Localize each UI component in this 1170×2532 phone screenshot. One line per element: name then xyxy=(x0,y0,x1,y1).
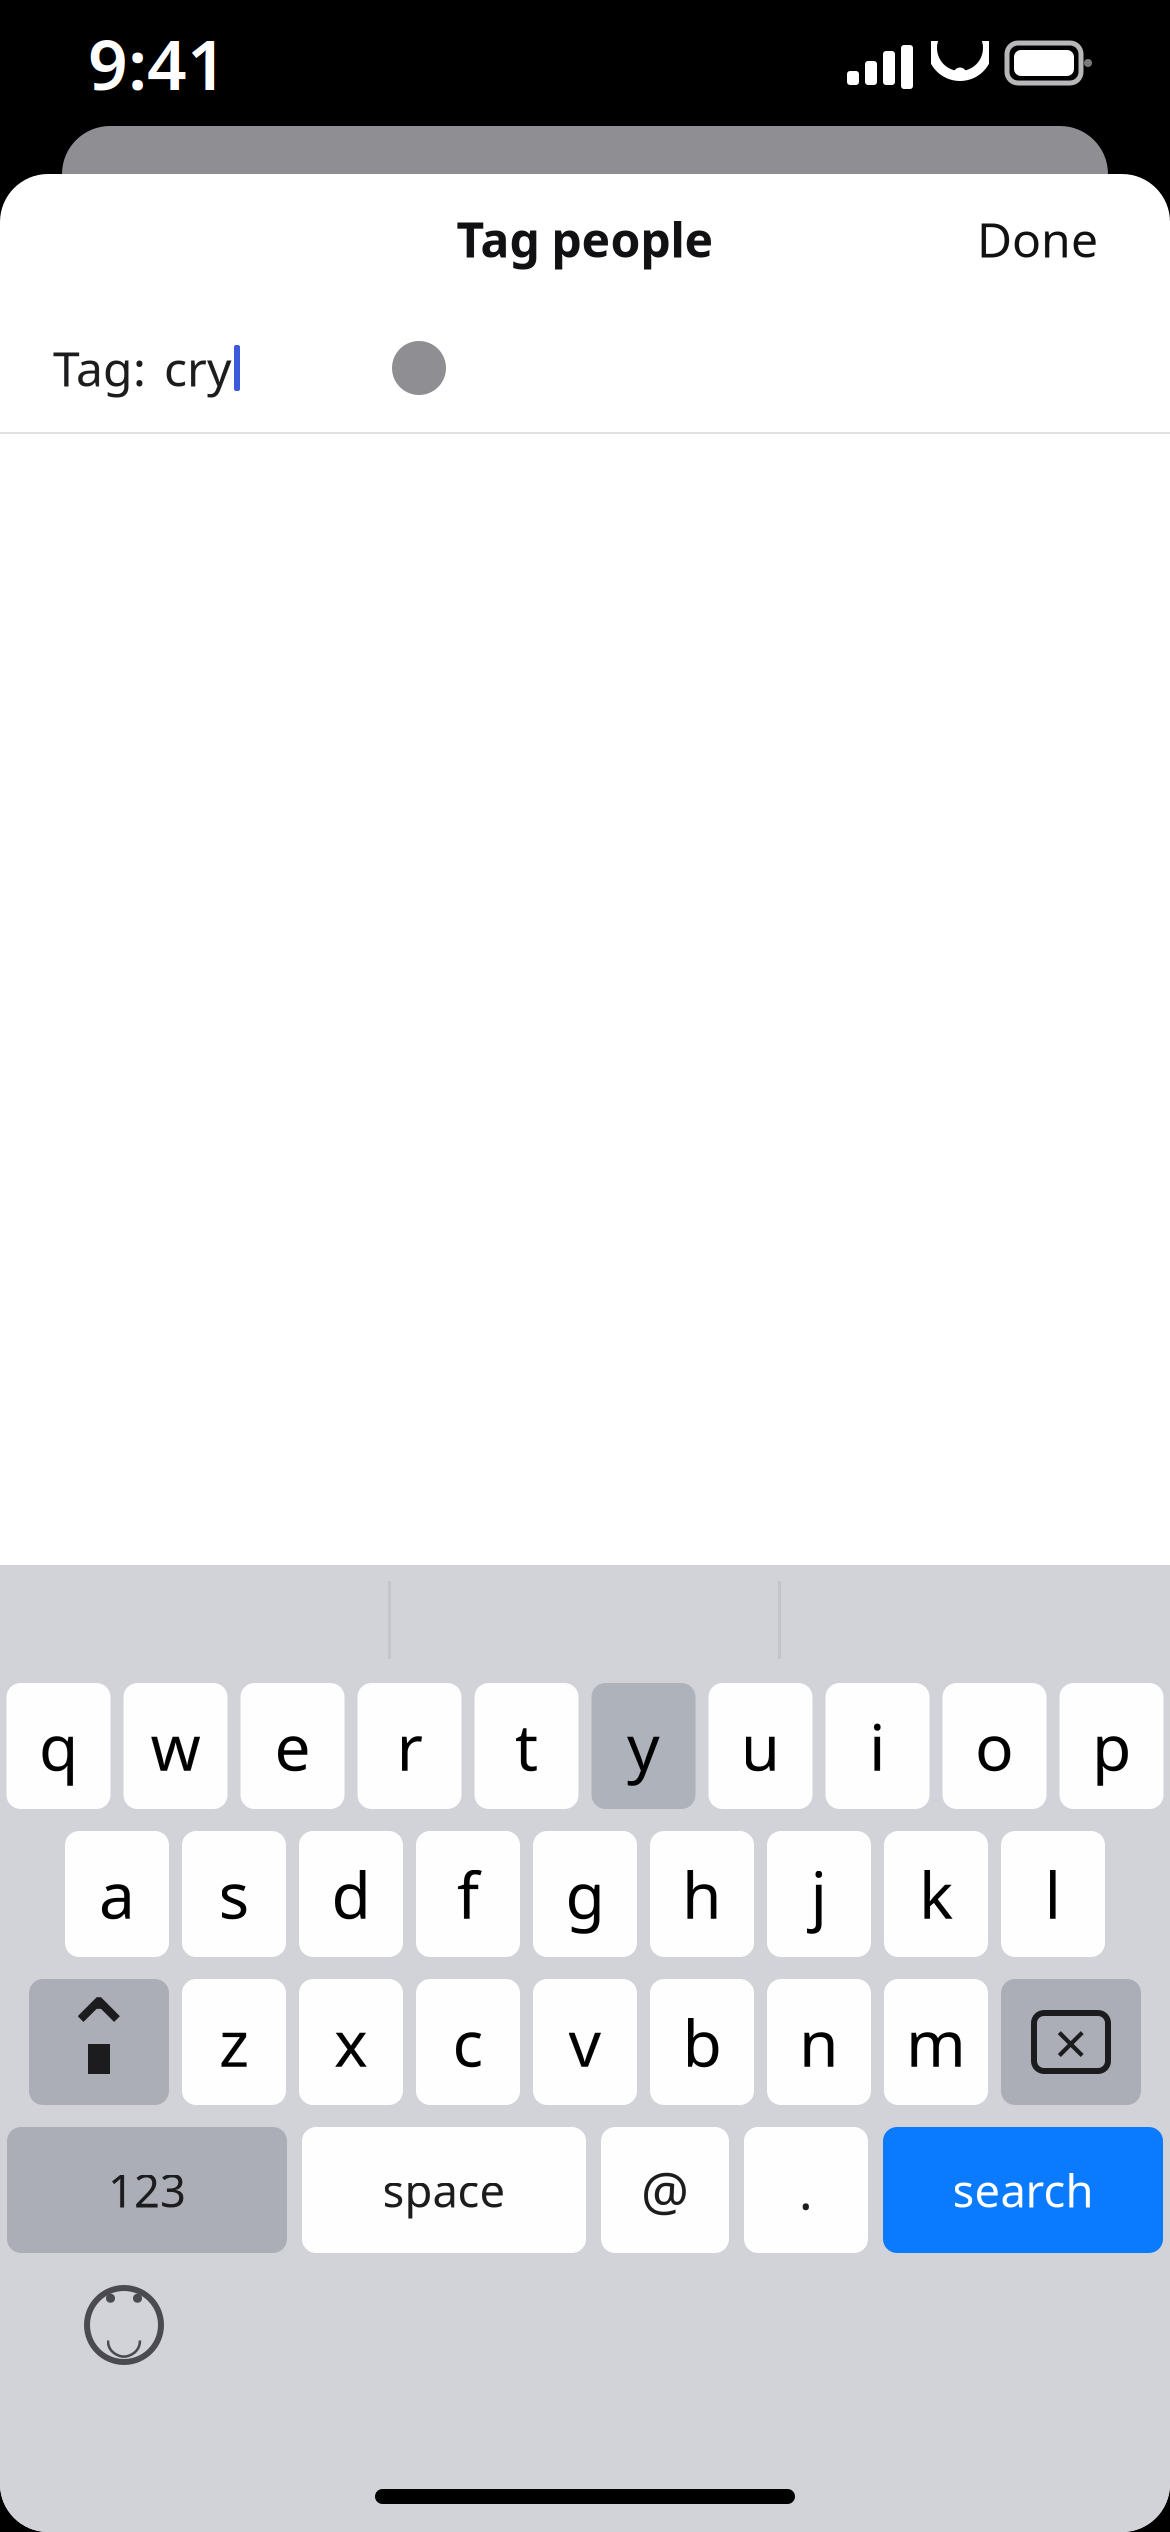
button[interactable]: r xyxy=(357,1683,461,1809)
staticText: j xyxy=(810,1851,827,1936)
button[interactable]: k xyxy=(884,1831,988,1957)
staticText: × xyxy=(1054,2003,1088,2081)
staticText: s xyxy=(218,1851,249,1936)
staticText: m xyxy=(906,1999,966,2084)
staticText: w xyxy=(150,1703,200,1788)
staticText: d xyxy=(331,1851,370,1936)
staticText: ◡ xyxy=(106,2311,141,2362)
button[interactable]: x xyxy=(299,1979,403,2105)
button[interactable]: b xyxy=(650,1979,754,2105)
button[interactable]: f xyxy=(416,1831,520,1957)
staticText: h xyxy=(682,1851,722,1936)
staticText: f xyxy=(457,1851,479,1936)
staticText: Tag: xyxy=(53,336,146,400)
staticText: Done xyxy=(977,207,1098,271)
staticText: y xyxy=(627,1703,660,1788)
button[interactable]: . xyxy=(744,2127,868,2253)
staticText: 123 xyxy=(108,2160,186,2220)
button[interactable]: l xyxy=(1001,1831,1105,1957)
staticText: b xyxy=(682,1999,721,2084)
staticText: . xyxy=(799,2156,813,2224)
button[interactable]: p xyxy=(1059,1683,1163,1809)
button[interactable]: u xyxy=(708,1683,812,1809)
staticText: l xyxy=(1044,1851,1061,1936)
button[interactable]: Done xyxy=(953,191,1122,287)
button[interactable]: n xyxy=(767,1979,871,2105)
button[interactable]: m xyxy=(884,1979,988,2105)
staticText: 9:41 xyxy=(88,17,227,109)
staticText: r xyxy=(396,1703,422,1788)
button[interactable]: o xyxy=(942,1683,1046,1809)
staticText: v xyxy=(568,1999,601,2084)
staticText: ⌃ xyxy=(57,1979,140,2091)
button[interactable]: s xyxy=(182,1831,286,1957)
staticText: x xyxy=(334,1999,368,2084)
button[interactable]: c xyxy=(416,1979,520,2105)
button[interactable]: v xyxy=(533,1979,637,2105)
button[interactable]: h xyxy=(650,1831,754,1957)
button[interactable]: @ xyxy=(601,2127,729,2253)
button[interactable]: a xyxy=(65,1831,169,1957)
button[interactable]: Emoji keyboard xyxy=(74,2275,174,2375)
button[interactable]: space xyxy=(302,2127,586,2253)
staticText: t xyxy=(515,1703,538,1788)
button[interactable]: g xyxy=(533,1831,637,1957)
staticText: o xyxy=(975,1703,1014,1788)
staticText: space xyxy=(382,2160,505,2220)
staticText: c xyxy=(452,1999,483,2084)
staticText: Tag people xyxy=(456,207,713,271)
button[interactable]: search xyxy=(883,2127,1163,2253)
button[interactable]: e xyxy=(240,1683,344,1809)
staticText: n xyxy=(799,1999,839,2084)
staticText: a xyxy=(99,1851,135,1936)
button[interactable]: z xyxy=(182,1979,286,2105)
staticText: q xyxy=(39,1703,78,1788)
staticText: p xyxy=(1092,1703,1131,1788)
button[interactable]: j xyxy=(767,1831,871,1957)
button[interactable]: y xyxy=(591,1683,695,1809)
staticText: search xyxy=(952,2160,1093,2220)
staticText: u xyxy=(740,1703,780,1788)
staticText: i xyxy=(869,1703,886,1788)
staticText: e xyxy=(274,1703,310,1788)
staticText: cry xyxy=(164,336,231,400)
staticText: z xyxy=(219,1999,249,2084)
button[interactable]: Shift xyxy=(29,1979,169,2105)
button[interactable]: i xyxy=(825,1683,929,1809)
button[interactable]: q xyxy=(6,1683,110,1809)
staticText: g xyxy=(565,1851,604,1936)
staticText: k xyxy=(919,1851,953,1936)
staticText: @ xyxy=(641,2155,689,2225)
button[interactable]: Delete xyxy=(1001,1979,1141,2105)
button[interactable]: 123 xyxy=(7,2127,287,2253)
button[interactable]: t xyxy=(474,1683,578,1809)
button[interactable]: w xyxy=(123,1683,227,1809)
button[interactable]: d xyxy=(299,1831,403,1957)
